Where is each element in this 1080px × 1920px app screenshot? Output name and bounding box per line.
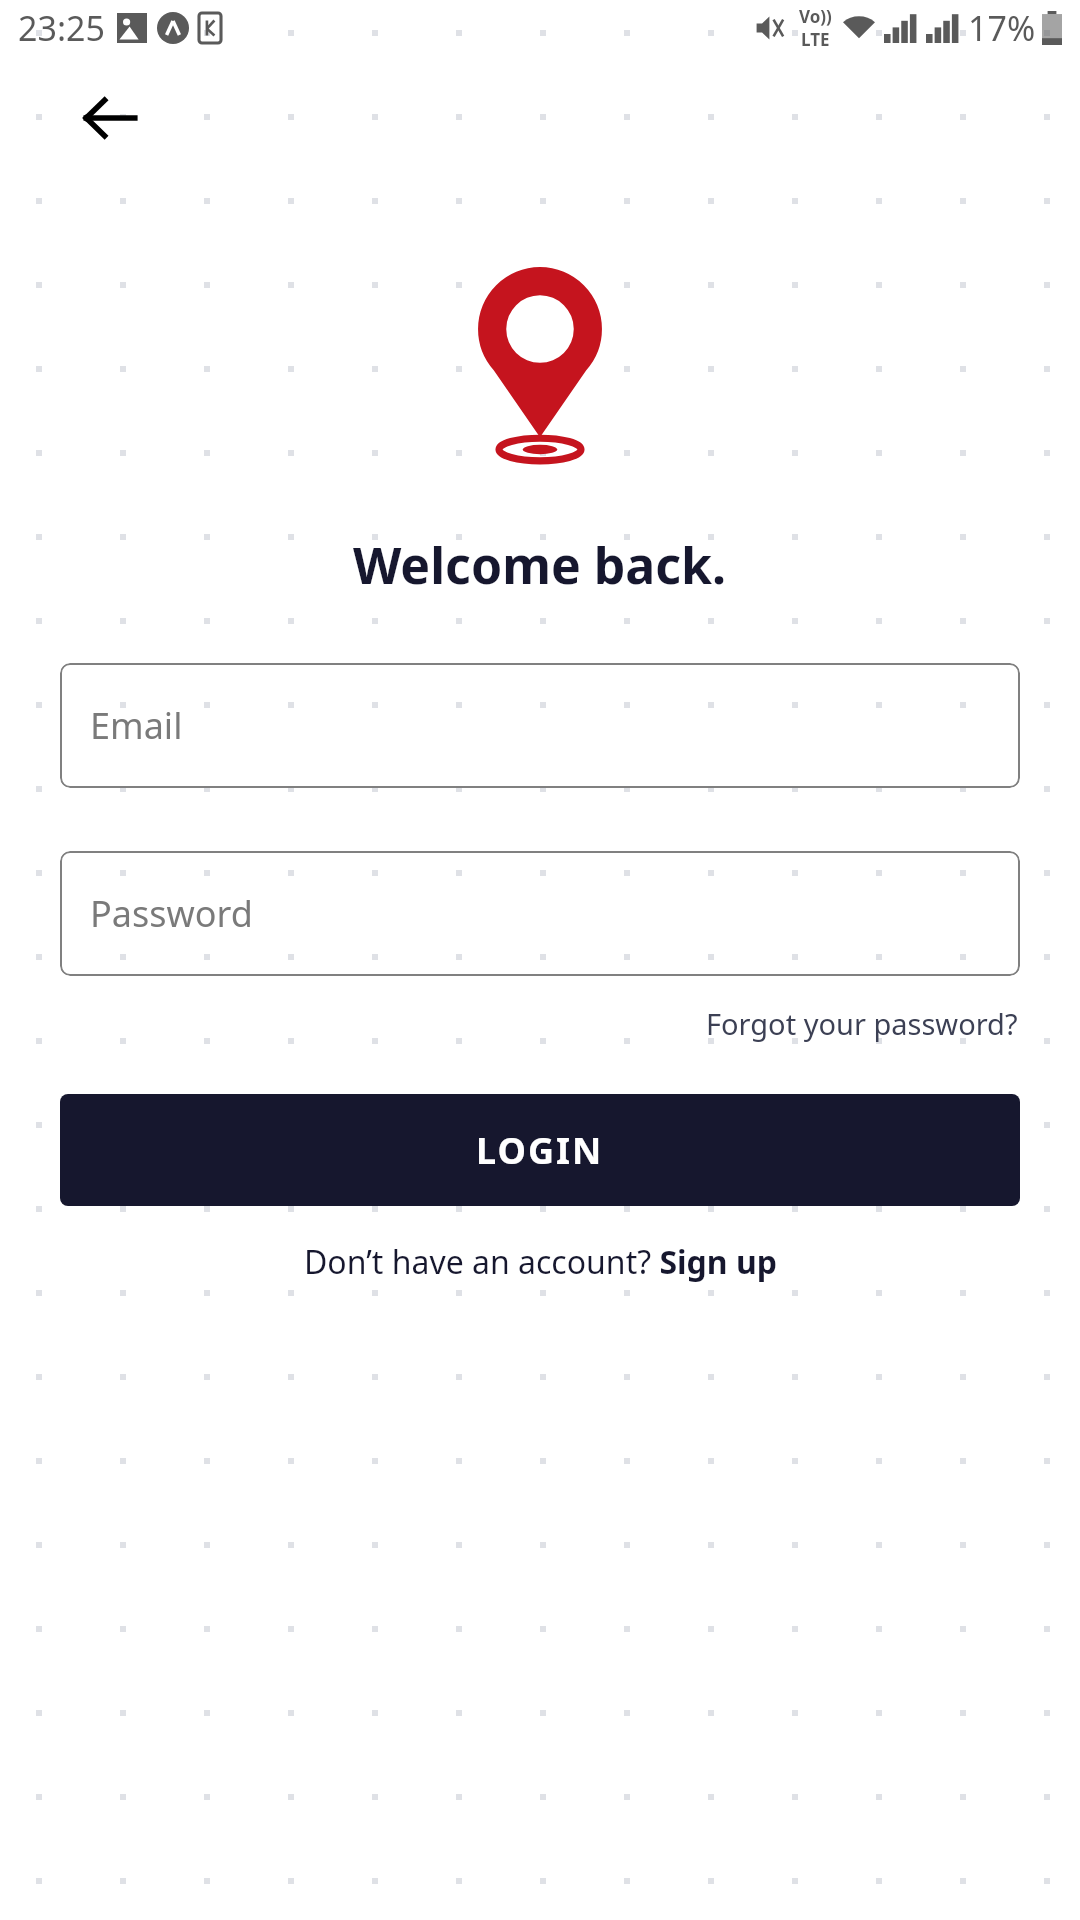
button[interactable]: LOGIN (60, 1094, 1020, 1206)
staticText: Password (90, 889, 253, 938)
button[interactable]: Forgot your password? (704, 998, 1020, 1049)
staticText: 23:25 (18, 5, 105, 51)
button[interactable]: Password (60, 851, 1020, 976)
staticText: 17% (968, 5, 1036, 51)
button[interactable]: Back (62, 70, 158, 166)
button[interactable]: Email (60, 663, 1020, 788)
staticText: LOGIN (476, 1126, 604, 1175)
staticText: Vo)) (799, 5, 832, 28)
button[interactable]: Don’t have an account? Sign up (296, 1234, 785, 1290)
staticText: Forgot your password? (706, 1004, 1018, 1043)
staticText: LTE (801, 28, 830, 51)
staticText: Email (90, 701, 183, 750)
staticText: Welcome back. (353, 531, 727, 599)
staticText: Don’t have an account? Sign up (304, 1240, 777, 1284)
